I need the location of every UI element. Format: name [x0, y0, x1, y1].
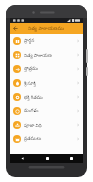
button[interactable]: పూజా విధి — [10, 118, 83, 132]
button[interactable]: Back — [11, 24, 20, 33]
staticText: స్తోత్రము — [24, 66, 76, 72]
button[interactable]: Home — [35, 154, 59, 163]
button[interactable]: స్తోత్రము — [10, 62, 83, 76]
button[interactable]: ప్రార్థన — [10, 34, 83, 48]
button[interactable]: నిత్య పారాయణ — [10, 48, 83, 62]
staticText: నిత్య పారాయణ — [24, 52, 76, 59]
staticText: నిత్య పారాయణము — [28, 25, 65, 32]
staticText: ప్రార్థన — [24, 38, 76, 44]
button[interactable]: వ్రతములు — [10, 132, 83, 146]
button[interactable]: Back — [10, 154, 35, 163]
staticText: పూజా విధి — [24, 122, 76, 129]
staticText: భక్తి గీతము — [24, 94, 76, 101]
staticText: శ్రీ సూక్తి — [24, 80, 76, 87]
button[interactable]: Recent apps — [59, 154, 83, 163]
staticText: వ్రతములు — [24, 136, 76, 142]
button[interactable]: భక్తి గీతము — [10, 90, 83, 104]
button[interactable]: శ్రీ సూక్తి — [10, 76, 83, 90]
staticText: మంగళం — [24, 108, 76, 114]
button[interactable]: మంగళం — [10, 104, 83, 118]
